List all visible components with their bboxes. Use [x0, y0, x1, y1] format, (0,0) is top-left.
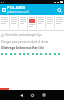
button[interactable]	[29, 16, 35, 29]
button[interactable]	[47, 16, 53, 29]
button[interactable]: Tag 3	[10, 53, 12, 55]
staticText: Olahraga Indonesia Hari Ini	[1, 46, 44, 50]
button[interactable]: Site icon	[2, 8, 6, 12]
button[interactable]	[38, 16, 44, 29]
button[interactable]: Tag 4	[14, 53, 16, 55]
button[interactable]: Tag 6	[23, 53, 25, 55]
button[interactable]: Tag 8	[32, 53, 34, 55]
button[interactable]	[20, 16, 26, 29]
button[interactable]: Tag 10	[40, 53, 42, 55]
button[interactable]: Tag 14	[58, 53, 60, 55]
button[interactable]: Hasil akhir pertandingan liga	[1, 33, 63, 37]
button[interactable]: Tag 5	[19, 53, 21, 55]
button[interactable]: Tag 7	[27, 53, 29, 55]
button[interactable]: Search	[56, 7, 62, 13]
button[interactable]: Tag 9	[36, 53, 38, 55]
staticText: Hasil akhir pertandingan liga	[5, 33, 42, 37]
button[interactable]: Home	[27, 90, 38, 100]
button[interactable]: Tag 13	[54, 53, 56, 55]
button[interactable]	[11, 16, 17, 29]
button[interactable]: Tag 11	[45, 53, 47, 55]
button[interactable]: Tag 2	[5, 53, 7, 55]
staticText: Dengan para pemain terbaik di dunia	[1, 40, 49, 44]
button[interactable]	[56, 16, 63, 29]
staticText: polarisnews.co.id	[7, 10, 29, 14]
button[interactable]: Tag 12	[49, 53, 51, 55]
button[interactable]: Recent apps	[38, 90, 49, 100]
button[interactable]	[1, 16, 8, 29]
staticText: POLARIS	[7, 5, 26, 10]
button[interactable]: Tag 1	[1, 53, 3, 55]
button[interactable]: Back	[16, 90, 27, 100]
